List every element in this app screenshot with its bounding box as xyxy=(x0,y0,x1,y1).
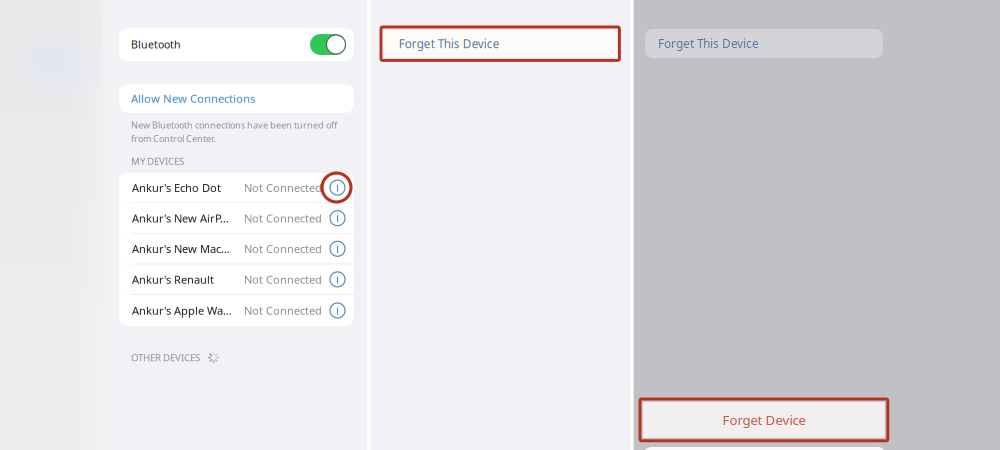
button[interactable]: Ankur's New Mac… xyxy=(119,234,354,264)
staticText: from Control Center. xyxy=(131,132,215,145)
button[interactable]: Forget This Device xyxy=(645,29,883,58)
staticText: Allow New Connections xyxy=(131,91,255,106)
button[interactable]: Forget Device xyxy=(640,399,888,441)
button[interactable]: Ankur's Renault xyxy=(119,264,354,295)
staticText: OTHER DEVICES xyxy=(131,351,200,364)
staticText: i xyxy=(336,179,339,195)
staticText: Ankur's New AirP… xyxy=(132,211,229,226)
button[interactable]: Forget This Device xyxy=(381,27,619,60)
staticText: MY DEVICES xyxy=(131,154,184,168)
staticText: Forget Device xyxy=(722,411,805,429)
staticText: Not Connected xyxy=(244,272,322,287)
staticText: i xyxy=(336,302,339,318)
staticText: New Bluetooth connections have been turn… xyxy=(131,119,337,131)
staticText: i xyxy=(336,209,339,226)
button[interactable]: Ankur's Echo Dot xyxy=(119,173,354,203)
staticText: Ankur's New Mac… xyxy=(132,241,230,256)
button[interactable]: Ankur's Apple Wa… xyxy=(119,295,354,326)
staticText: Bluetooth xyxy=(131,37,181,52)
staticText: i xyxy=(336,271,339,287)
staticText: i xyxy=(336,240,339,256)
staticText: Not Connected xyxy=(244,303,322,318)
staticText: Ankur's Apple Wa… xyxy=(132,303,232,318)
button[interactable]: Ankur's New AirP… xyxy=(119,203,354,234)
staticText: Forget This Device xyxy=(399,36,500,52)
staticText: Not Connected xyxy=(244,180,322,195)
button[interactable]: Allow New Connections xyxy=(119,84,354,113)
staticText: Not Connected xyxy=(244,241,322,256)
staticText: Ankur's Renault xyxy=(132,272,214,287)
staticText: Not Connected xyxy=(244,211,322,226)
staticText: Ankur's Echo Dot xyxy=(132,180,221,195)
staticText: Forget This Device xyxy=(658,36,759,51)
